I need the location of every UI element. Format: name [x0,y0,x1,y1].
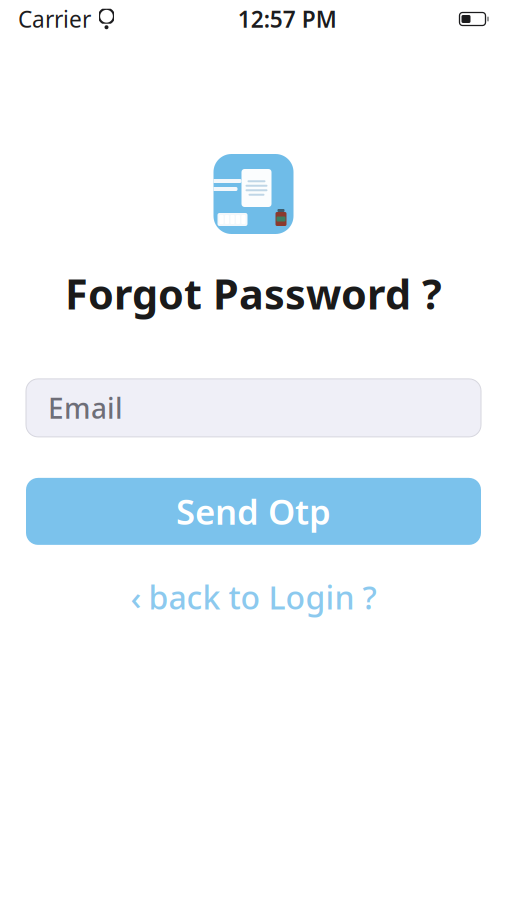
button[interactable]: ‹ [112,567,394,627]
staticText: Carrier [18,4,91,34]
staticText: 12:57 PM [238,4,337,34]
button[interactable]: Send Otp [26,478,481,545]
staticText: Send Otp [176,488,331,534]
staticText: back to Login ? [148,576,376,618]
staticText: Email [48,389,123,426]
staticText: Forgot Password ? [65,266,442,321]
staticText: ‹ [130,575,141,619]
